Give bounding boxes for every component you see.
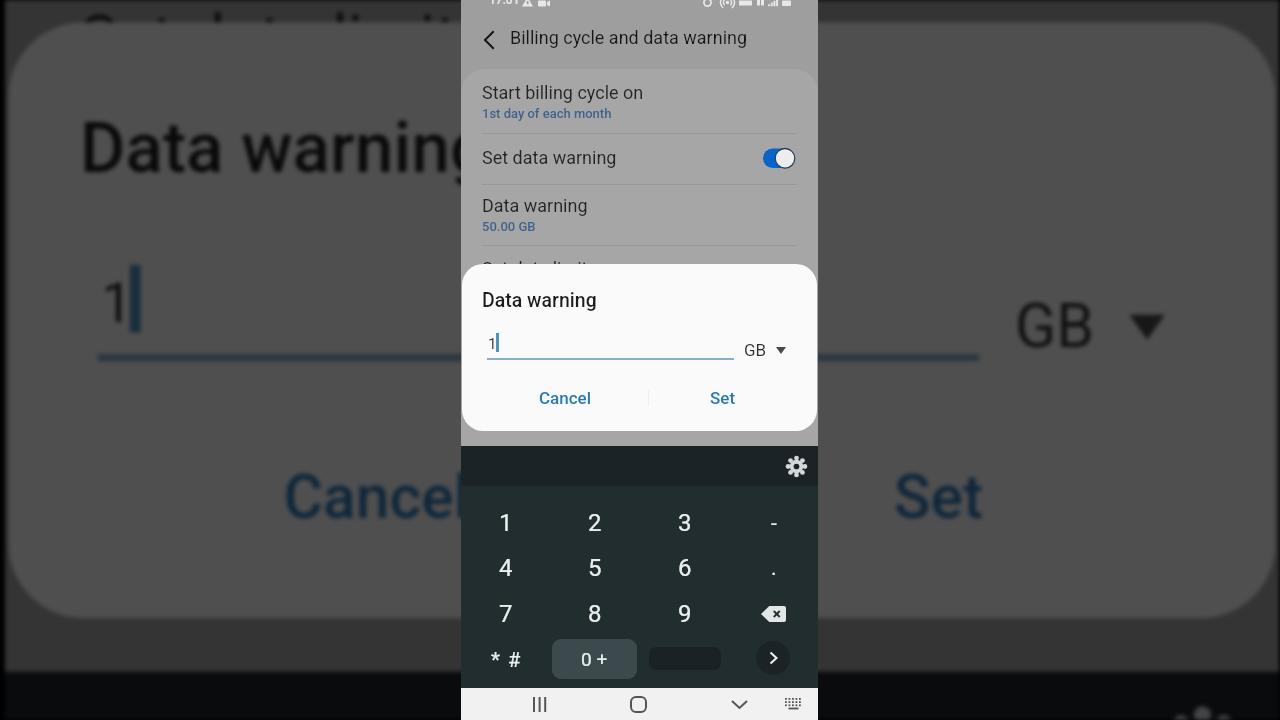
button[interactable]: 9 <box>640 591 729 637</box>
staticText: 0 + <box>581 648 608 670</box>
staticText: 1 <box>488 335 497 353</box>
staticText: Set <box>894 461 986 533</box>
button[interactable]: Set <box>644 381 801 415</box>
staticText: 50.00 GB <box>482 219 536 234</box>
staticText: . <box>771 556 777 581</box>
button[interactable]: Navigate up <box>475 26 503 54</box>
other: Delete <box>761 606 786 622</box>
button[interactable]: 1 <box>461 500 550 546</box>
staticText: Set data limit <box>80 1 458 76</box>
staticText: Data warning <box>80 108 490 190</box>
button[interactable]: Recents <box>519 688 559 720</box>
staticText: 2 <box>588 509 602 537</box>
button[interactable]: 7 <box>461 591 550 637</box>
button[interactable]: GB <box>744 340 786 360</box>
staticText: - <box>771 511 777 536</box>
button[interactable]: 5 <box>550 545 639 591</box>
button[interactable]: Cancel <box>98 436 658 557</box>
staticText: Set data warning <box>482 147 617 168</box>
button[interactable]: 8 <box>550 591 639 637</box>
staticText: Cancel <box>283 461 473 533</box>
staticText: 9 <box>678 600 692 628</box>
staticText: Start billing cycle on <box>482 82 644 103</box>
staticText: 7 <box>499 600 513 628</box>
button[interactable]: Cancel <box>487 381 644 415</box>
button[interactable]: Hide keyboard <box>719 688 759 720</box>
button[interactable]: Delete <box>729 591 818 637</box>
button[interactable]: 2 <box>550 500 639 546</box>
staticText: GB <box>744 340 767 360</box>
staticText: 1st day of each month <box>482 106 612 121</box>
button[interactable]: GB <box>1015 290 1165 361</box>
button[interactable]: Set data warning <box>461 133 818 184</box>
staticText: 6 <box>678 554 692 582</box>
staticText: Data warning <box>482 289 597 312</box>
button[interactable]: Home <box>618 688 658 720</box>
button[interactable]: . <box>729 545 818 591</box>
staticText: * <box>491 648 501 673</box>
button[interactable]: Set <box>658 436 1218 557</box>
button[interactable]: 4 <box>461 545 550 591</box>
staticText: 3 <box>678 509 692 537</box>
staticText: GB <box>1015 290 1097 361</box>
button[interactable]: Set data limit <box>5 0 1279 168</box>
button[interactable]: 3 <box>640 500 729 546</box>
button[interactable]: - <box>729 500 818 546</box>
staticText: 8 <box>588 600 602 628</box>
staticText: Set <box>710 388 736 408</box>
button[interactable]: Next <box>756 641 790 675</box>
button[interactable]: Keyboard settings <box>1165 707 1240 720</box>
staticText: Set data limit <box>482 258 588 279</box>
staticText: 4 <box>499 554 513 582</box>
button[interactable]: Change keyboard <box>773 688 813 720</box>
staticText: Cancel <box>539 388 592 408</box>
button[interactable]: Keyboard settings <box>786 456 807 477</box>
staticText: Billing cycle and data warning <box>510 27 748 48</box>
button[interactable]: 6 <box>640 545 729 591</box>
staticText: 17:01 <box>489 0 520 7</box>
button[interactable]: Start billing cycle on <box>461 69 818 133</box>
staticText: 1 <box>101 272 133 336</box>
button[interactable]: Data warning <box>461 182 818 246</box>
staticText: 1 <box>499 509 513 537</box>
staticText: # <box>508 648 521 671</box>
button[interactable]: * <box>461 636 550 682</box>
button[interactable]: Set data limit <box>461 245 818 305</box>
button[interactable]: 0 + <box>552 639 637 679</box>
staticText: 5 <box>588 554 602 582</box>
staticText: Data warning <box>482 195 588 216</box>
